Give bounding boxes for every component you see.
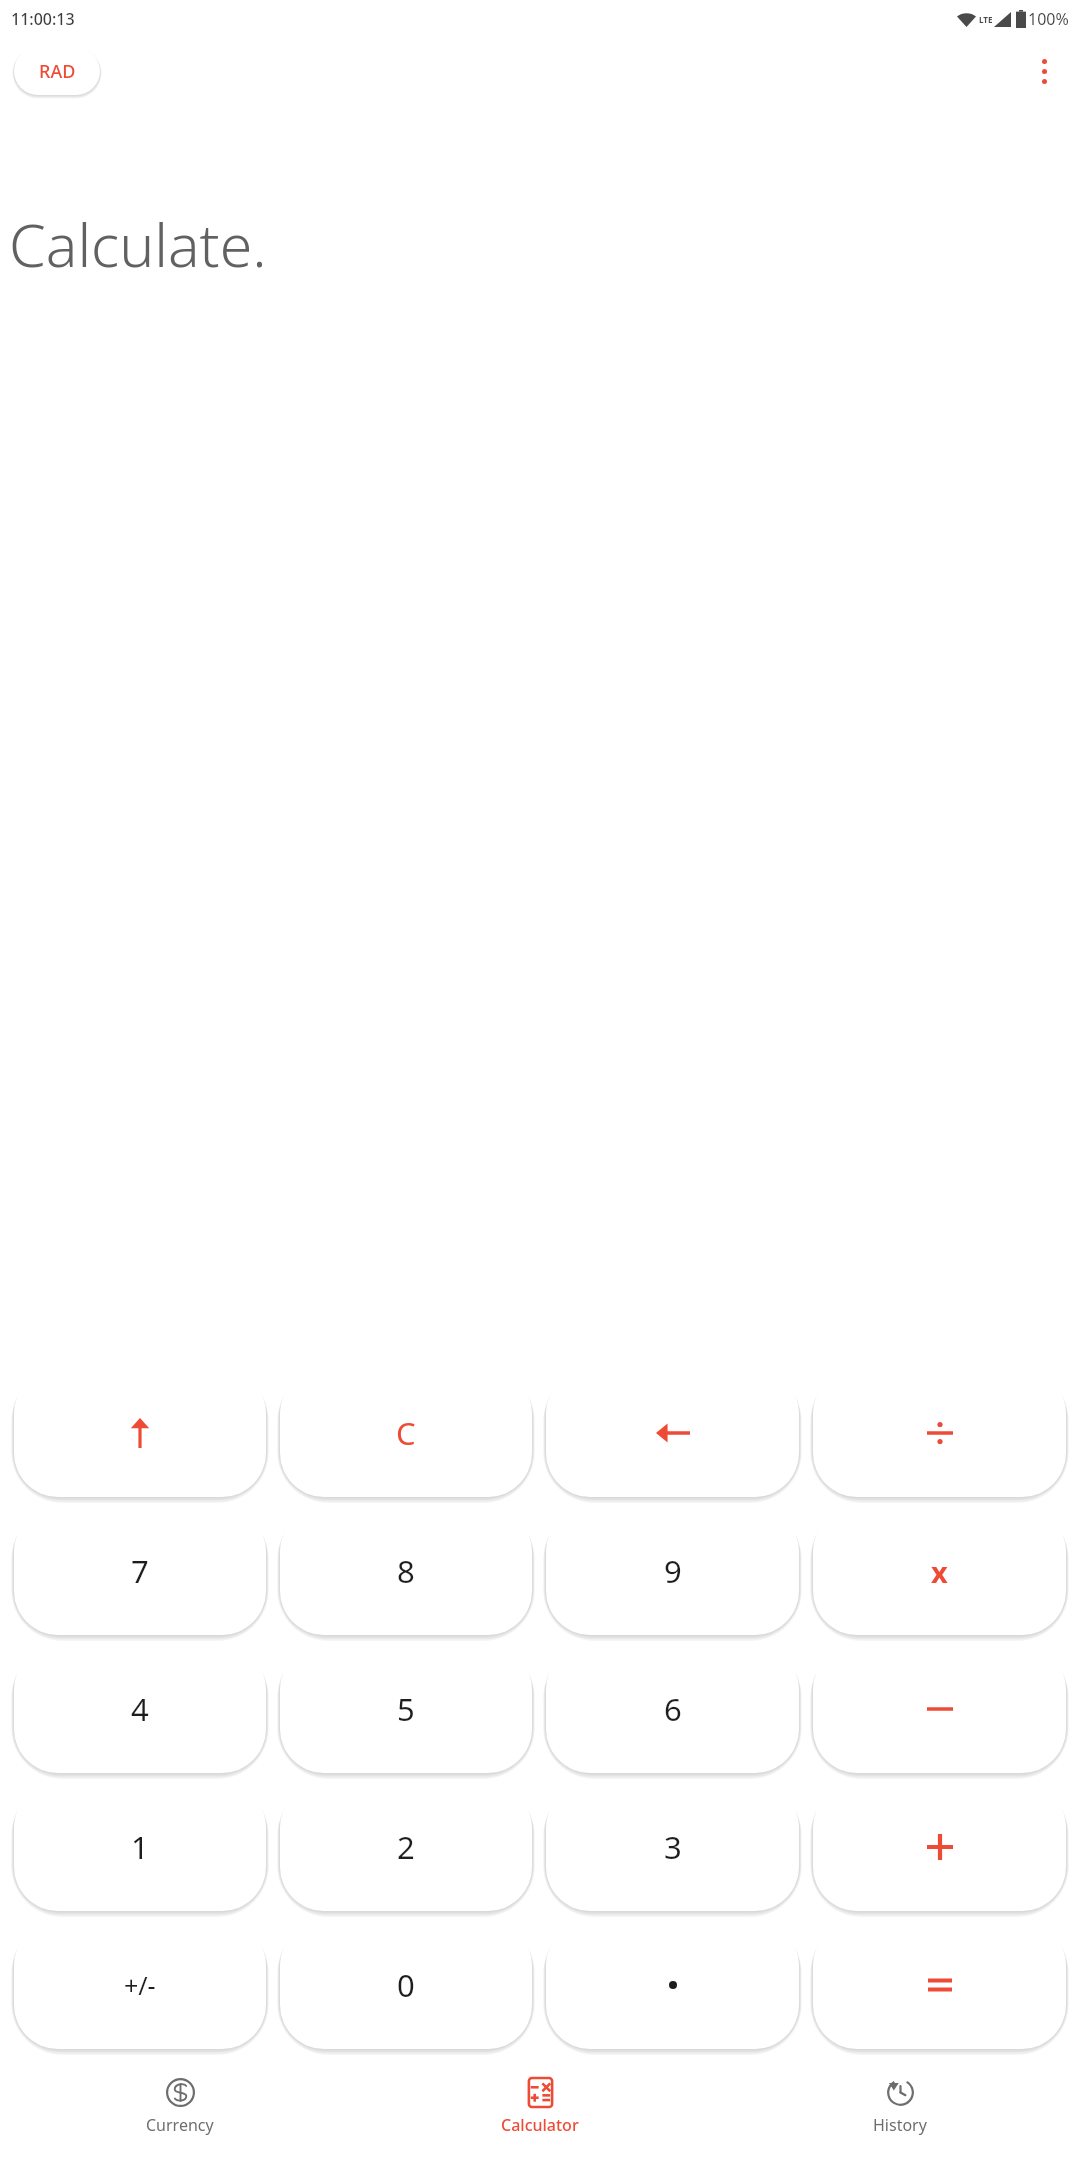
button[interactable]: Minus: [813, 1645, 1066, 1773]
button[interactable]: 7: [14, 1507, 266, 1635]
button[interactable]: Divide: [813, 1369, 1066, 1497]
staticText: History: [873, 2114, 927, 2136]
staticText: 7: [131, 1550, 149, 1592]
staticText: 4: [131, 1688, 149, 1730]
button[interactable]: More options: [1020, 47, 1068, 95]
button[interactable]: History: [720, 2068, 1080, 2146]
staticText: Currency: [146, 2114, 214, 2136]
button[interactable]: 5: [280, 1645, 532, 1773]
button[interactable]: Backspace: [546, 1369, 799, 1497]
staticText: 100%: [1028, 8, 1069, 30]
staticText: 6: [664, 1688, 682, 1730]
staticText: 8: [397, 1550, 415, 1592]
staticText: 0: [397, 1964, 415, 2006]
button[interactable]: 2: [280, 1783, 532, 1911]
staticText: 2: [397, 1826, 415, 1868]
staticText: LTE: [979, 14, 993, 25]
staticText: x: [931, 1552, 948, 1591]
button[interactable]: Up: [14, 1369, 266, 1497]
button[interactable]: Calculator: [360, 2068, 720, 2146]
staticText: 5: [397, 1688, 415, 1730]
button[interactable]: 6: [546, 1645, 799, 1773]
button[interactable]: 4: [14, 1645, 266, 1773]
button[interactable]: C: [280, 1369, 532, 1497]
button[interactable]: Currency: [0, 2068, 360, 2146]
staticText: 3: [664, 1826, 682, 1868]
button[interactable]: Plus: [813, 1783, 1066, 1911]
button[interactable]: 9: [546, 1507, 799, 1635]
button[interactable]: Multiply: [813, 1507, 1066, 1635]
button[interactable]: 0: [280, 1921, 532, 2049]
button[interactable]: RAD: [14, 47, 100, 95]
staticText: 11:00:13: [11, 8, 75, 30]
staticText: 1: [131, 1826, 149, 1868]
button[interactable]: 1: [14, 1783, 266, 1911]
button[interactable]: +/-: [14, 1921, 266, 2049]
staticText: RAD: [39, 59, 76, 84]
button[interactable]: Decimal point: [546, 1921, 799, 2049]
staticText: Calculate.: [9, 204, 267, 284]
staticText: +/-: [124, 1968, 156, 2002]
staticText: C: [396, 1412, 416, 1454]
button[interactable]: Equals: [813, 1921, 1066, 2049]
staticText: Calculator: [501, 2114, 579, 2136]
button[interactable]: 8: [280, 1507, 532, 1635]
staticText: 9: [664, 1550, 682, 1592]
button[interactable]: 3: [546, 1783, 799, 1911]
